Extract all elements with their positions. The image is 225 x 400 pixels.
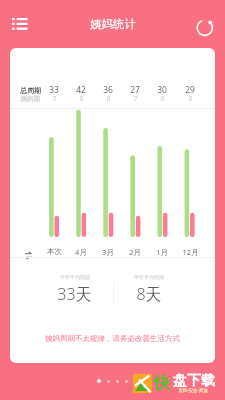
staticText: 半年平均经期 xyxy=(134,274,164,280)
staticText: 姨妈期 xyxy=(20,95,40,103)
staticText: 1月 xyxy=(156,247,168,257)
staticText: 本次 xyxy=(47,247,62,256)
staticText: 36 xyxy=(103,84,113,96)
staticText: 总周期 xyxy=(20,86,41,95)
button[interactable]: Switch chart xyxy=(21,248,35,262)
staticText: 盘下载 xyxy=(173,372,215,390)
staticText: 27 xyxy=(130,84,140,96)
staticText: 8 xyxy=(79,94,84,104)
button[interactable]: 半年平均周期 xyxy=(34,274,114,318)
staticText: 8 xyxy=(106,94,111,104)
button[interactable]: Refresh xyxy=(193,16,217,40)
staticText: 7 xyxy=(133,94,138,104)
staticText: 2月 xyxy=(129,247,141,257)
staticText: 7 xyxy=(52,94,57,104)
staticText: 30 xyxy=(157,84,167,96)
button[interactable]: Menu xyxy=(8,13,32,37)
staticText: 12月 xyxy=(182,247,199,257)
staticText: 快 xyxy=(154,373,170,393)
staticText: 29 xyxy=(185,84,195,96)
staticText: 导航·安全·高速 xyxy=(178,387,208,393)
staticText: 8天 xyxy=(136,283,162,305)
staticText: 8 xyxy=(188,94,193,104)
staticText: 姨妈统计 xyxy=(90,17,136,31)
staticText: 33 xyxy=(49,84,59,96)
staticText: 3月 xyxy=(102,247,114,257)
staticText: 33天 xyxy=(57,283,92,305)
staticText: 8 xyxy=(160,94,165,104)
button[interactable]: 半年平均经期 xyxy=(109,274,189,318)
staticText: 4月 xyxy=(75,247,87,257)
staticText: 半年平均周期 xyxy=(60,274,90,280)
staticText: 姨妈周期不太规律，请务必改善生活方式 xyxy=(45,334,180,343)
staticText: 42 xyxy=(76,84,86,96)
